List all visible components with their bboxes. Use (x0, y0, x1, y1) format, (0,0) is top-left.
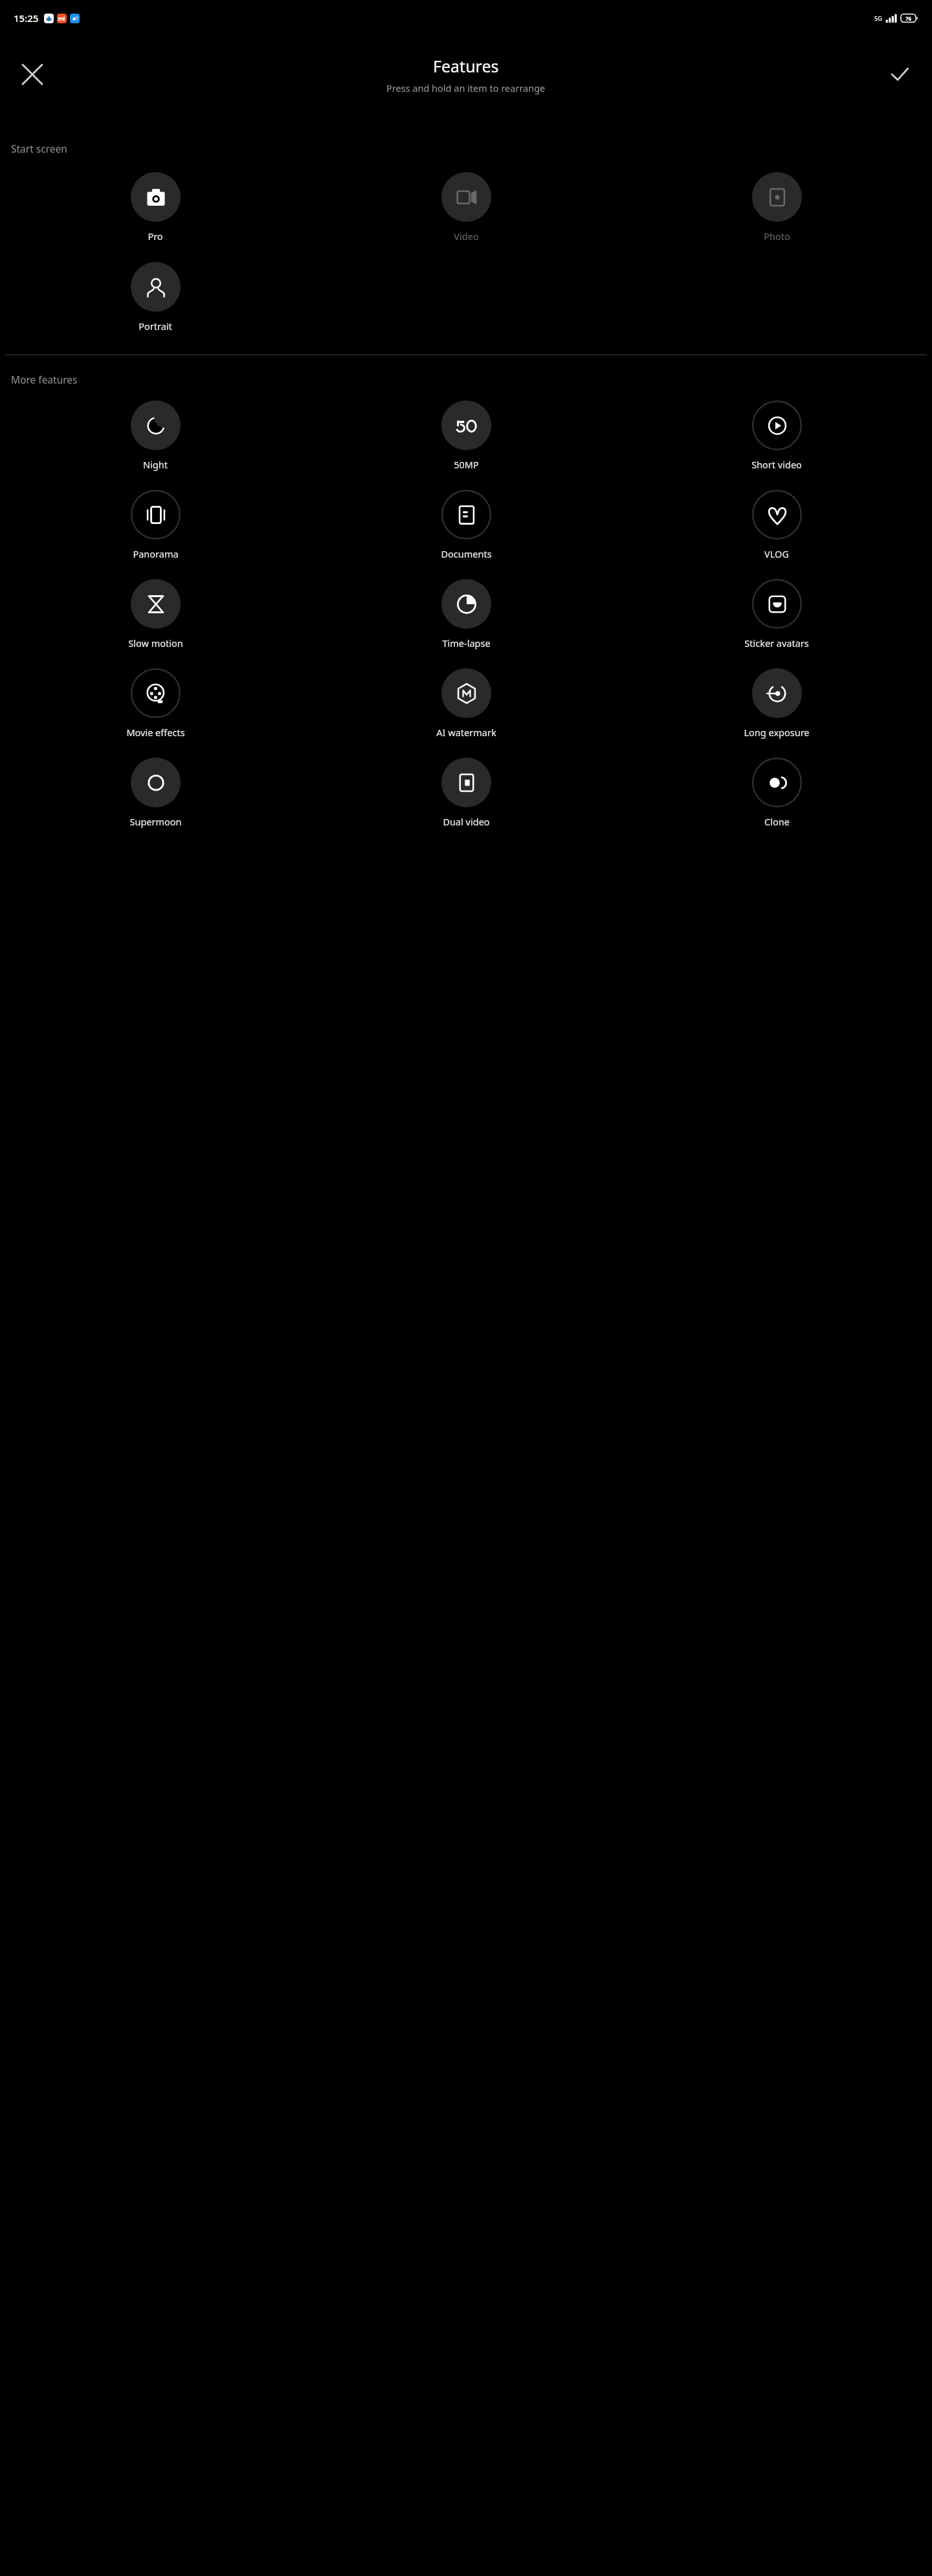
staticText: 50MP (454, 458, 479, 471)
button[interactable]: Movie effects (0, 666, 311, 741)
staticText: Documents (441, 547, 492, 560)
staticText: Clone (764, 815, 790, 828)
button[interactable]: Panorama (0, 487, 311, 563)
button[interactable]: Supermoon (0, 755, 311, 831)
staticText: Photo (764, 230, 790, 243)
button[interactable]: Short video (621, 398, 932, 474)
staticText: Supermoon (129, 815, 182, 828)
button[interactable]: Photo (621, 169, 932, 245)
staticText: VLOG (764, 547, 789, 560)
staticText: Dual video (443, 815, 490, 828)
button[interactable]: Video (311, 169, 621, 245)
staticText: 76 (905, 15, 912, 22)
button[interactable]: Clone (621, 755, 932, 831)
staticText: Sticker avatars (744, 637, 809, 649)
button[interactable]: Night (0, 398, 311, 474)
staticText: Panorama (133, 547, 179, 560)
button[interactable]: VLOG (621, 487, 932, 563)
button[interactable]: Sticker avatars (621, 576, 932, 652)
staticText: Features (433, 55, 499, 77)
staticText: 15:25 (14, 12, 39, 25)
button[interactable]: Dual video (311, 755, 621, 831)
staticText: Video (454, 230, 479, 243)
staticText: Slow motion (128, 637, 183, 649)
staticText: Pro (148, 230, 163, 243)
button[interactable]: Portrait (0, 259, 311, 335)
button[interactable]: Long exposure (621, 666, 932, 741)
staticText: Time-lapse (442, 637, 491, 649)
staticText: More features (11, 373, 78, 386)
staticText: mi (58, 15, 65, 22)
button[interactable]: Slow motion (0, 576, 311, 652)
button[interactable]: Time-lapse (311, 576, 621, 652)
staticText: Portrait (139, 320, 172, 333)
button[interactable]: 50MP (311, 398, 621, 474)
staticText: AI watermark (436, 726, 496, 739)
staticText: 5G (874, 14, 882, 22)
staticText: Movie effects (126, 726, 185, 739)
button[interactable]: AI watermark (311, 666, 621, 741)
staticText: Press and hold an item to rearrange (386, 82, 546, 94)
staticText: Long exposure (744, 726, 810, 739)
button[interactable]: Close (9, 51, 56, 98)
staticText: Short video (751, 458, 802, 471)
button[interactable]: Pro (0, 169, 311, 245)
button[interactable]: Documents (311, 487, 621, 563)
staticText: Night (143, 458, 168, 471)
staticText: Start screen (11, 142, 67, 155)
button[interactable]: Confirm (876, 51, 923, 98)
